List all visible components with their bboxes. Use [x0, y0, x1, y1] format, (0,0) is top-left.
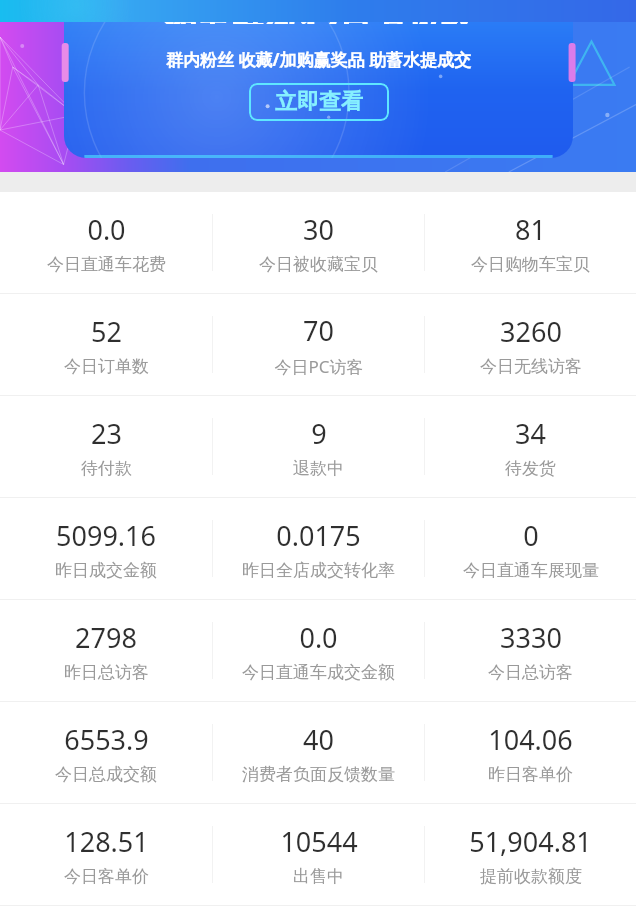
- staticText: 104.06: [488, 721, 573, 758]
- staticText: 70: [303, 312, 334, 349]
- button[interactable]: 128.51: [0, 804, 212, 905]
- staticText: 2798: [75, 619, 137, 656]
- staticText: 128.51: [64, 823, 149, 860]
- staticText: 51,904.81: [469, 823, 592, 860]
- button[interactable]: 5099.16: [0, 498, 212, 599]
- button[interactable]: 0: [425, 498, 636, 599]
- staticText: 40: [303, 721, 334, 758]
- staticText: 0.0175: [276, 517, 361, 554]
- staticText: 今日被收藏宝贝: [259, 254, 378, 275]
- staticText: 今日直通车成交金额: [242, 662, 395, 683]
- staticText: 81: [515, 211, 546, 248]
- staticText: 退款中: [293, 458, 344, 479]
- staticText: 立即查看: [275, 88, 363, 116]
- button[interactable]: 3330: [425, 600, 636, 701]
- staticText: 昨日全店成交转化率: [242, 560, 395, 581]
- staticText: 10544: [280, 823, 358, 860]
- button[interactable]: 70: [213, 294, 424, 395]
- staticText: 9: [311, 415, 327, 452]
- staticText: 昨日客单价: [488, 764, 573, 785]
- staticText: 群内粉丝 收藏/加购赢奖品 助蓄水提成交: [64, 48, 573, 71]
- button[interactable]: 淘宝群效12百万攻略: [0, 0, 636, 172]
- button[interactable]: 34: [425, 396, 636, 497]
- button[interactable]: 6553.9: [0, 702, 212, 803]
- button[interactable]: 3260: [425, 294, 636, 395]
- staticText: 5099.16: [56, 517, 156, 554]
- staticText: 0: [523, 517, 539, 554]
- staticText: 待付款: [81, 458, 132, 479]
- staticText: 6553.9: [64, 721, 149, 758]
- button[interactable]: 0.0: [213, 600, 424, 701]
- button[interactable]: 40: [213, 702, 424, 803]
- staticText: 今日无线访客: [480, 356, 582, 377]
- staticText: 今日总成交额: [55, 764, 157, 785]
- staticText: 消费者负面反馈数量: [242, 764, 395, 785]
- button[interactable]: 0.0175: [213, 498, 424, 599]
- staticText: 出售中: [293, 866, 344, 887]
- staticText: 30: [303, 211, 334, 248]
- staticText: 23: [91, 415, 122, 452]
- staticText: 3260: [500, 313, 562, 350]
- button[interactable]: 104.06: [425, 702, 636, 803]
- staticText: 今日总访客: [488, 662, 573, 683]
- staticText: 今日直通车花费: [47, 254, 166, 275]
- staticText: 今日购物车宝贝: [471, 254, 590, 275]
- button[interactable]: 30: [213, 192, 424, 293]
- staticText: 昨日总访客: [64, 662, 149, 683]
- staticText: 0.0: [299, 619, 338, 656]
- button[interactable]: 0.0: [0, 192, 212, 293]
- button[interactable]: 9: [213, 396, 424, 497]
- staticText: 3330: [500, 619, 562, 656]
- button[interactable]: 23: [0, 396, 212, 497]
- staticText: 今日直通车展现量: [463, 560, 599, 581]
- button[interactable]: 立即查看: [275, 88, 363, 116]
- staticText: 今日客单价: [64, 866, 149, 887]
- staticText: 待发货: [505, 458, 556, 479]
- staticText: 提前收款额度: [480, 866, 582, 887]
- button[interactable]: 10544: [213, 804, 424, 905]
- button[interactable]: 2798: [0, 600, 212, 701]
- button[interactable]: 81: [425, 192, 636, 293]
- staticText: 今日PC访客: [274, 355, 364, 378]
- staticText: 昨日成交金额: [55, 560, 157, 581]
- button[interactable]: 51,904.81: [425, 804, 636, 905]
- staticText: 淘宝群效12百万攻略: [64, 22, 573, 24]
- staticText: 34: [515, 415, 546, 452]
- staticText: 0.0: [87, 211, 126, 248]
- staticText: 52: [91, 313, 122, 350]
- staticText: 今日订单数: [64, 356, 149, 377]
- button[interactable]: 52: [0, 294, 212, 395]
